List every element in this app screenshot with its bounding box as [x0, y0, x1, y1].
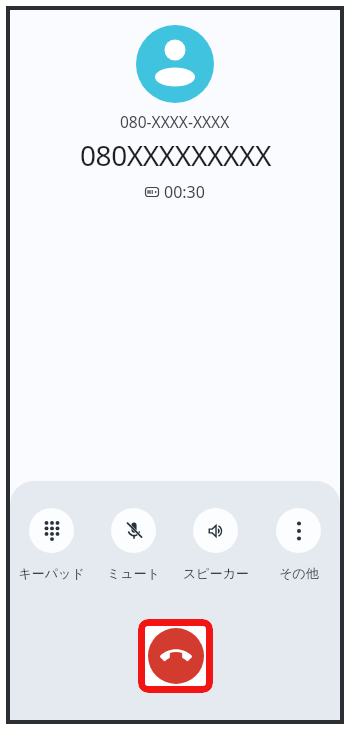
- button[interactable]: その他: [257, 508, 340, 581]
- button[interactable]: キーパッド: [10, 508, 92, 581]
- button[interactable]: ミュート: [92, 508, 174, 581]
- button[interactable]: スピーカー: [174, 508, 257, 581]
- staticText: 080-XXXX-XXXX: [120, 111, 230, 132]
- staticText: キーパッド: [18, 565, 85, 581]
- staticText: その他: [279, 565, 319, 581]
- button[interactable]: [138, 619, 213, 693]
- staticText: スピーカー: [183, 565, 249, 581]
- staticText: 00:30: [164, 181, 205, 203]
- staticText: ミュート: [107, 565, 160, 581]
- staticText: 080XXXXXXXXX: [80, 136, 271, 174]
